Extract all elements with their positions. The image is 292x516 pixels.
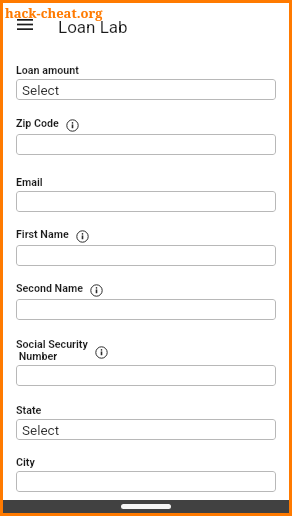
button[interactable]: More information <box>76 230 89 243</box>
button[interactable] <box>16 134 276 155</box>
button[interactable]: Open navigation menu <box>17 16 39 32</box>
button[interactable] <box>16 365 276 386</box>
button[interactable] <box>16 299 276 320</box>
button[interactable] <box>16 191 276 212</box>
staticText: Select <box>22 422 60 438</box>
staticText: Second Name <box>16 282 83 295</box>
staticText: Loan amount <box>16 64 79 77</box>
button[interactable]: More information <box>95 346 108 359</box>
button[interactable] <box>16 471 276 492</box>
button[interactable]: Select <box>16 79 276 100</box>
staticText: State <box>16 404 42 417</box>
staticText: Social Security Number <box>16 338 88 362</box>
button[interactable]: More information <box>90 284 103 297</box>
staticText: hack-cheat.org <box>5 4 103 22</box>
button[interactable]: More information <box>66 119 79 132</box>
staticText: City <box>16 456 35 469</box>
staticText: Loan Lab <box>58 17 128 37</box>
button[interactable]: Select <box>16 419 276 440</box>
staticText: Zip Code <box>16 117 59 130</box>
staticText: First Name <box>16 228 69 241</box>
staticText: Email <box>16 176 43 189</box>
button[interactable] <box>16 245 276 266</box>
staticText: Select <box>22 82 60 98</box>
